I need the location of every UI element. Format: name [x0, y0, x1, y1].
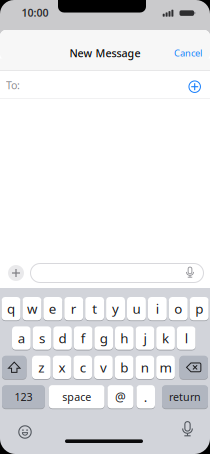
- button[interactable]: Message field: [30, 263, 204, 283]
- button[interactable]: @: [107, 385, 133, 409]
- staticText: u: [132, 300, 140, 317]
- button[interactable]: Delete: [179, 355, 208, 379]
- button[interactable]: m: [156, 355, 175, 379]
- button[interactable]: j: [136, 326, 154, 350]
- staticText: 123: [14, 390, 32, 404]
- button[interactable]: Add Contact: [188, 80, 202, 94]
- button[interactable]: p: [190, 296, 209, 321]
- button[interactable]: Emoji: [18, 425, 32, 439]
- staticText: .: [144, 388, 148, 406]
- staticText: space: [62, 390, 91, 404]
- button[interactable]: x: [53, 355, 71, 379]
- staticText: k: [162, 329, 169, 347]
- button[interactable]: c: [73, 355, 92, 379]
- button[interactable]: g: [94, 326, 113, 350]
- staticText: r: [71, 300, 77, 317]
- staticText: g: [100, 329, 108, 347]
- staticText: d: [59, 329, 67, 347]
- button[interactable]: k: [156, 326, 175, 350]
- staticText: s: [39, 329, 45, 347]
- button[interactable]: Dictation: [179, 421, 195, 438]
- button[interactable]: y: [106, 296, 125, 321]
- staticText: return: [169, 390, 201, 404]
- staticText: i: [156, 300, 159, 317]
- staticText: y: [112, 300, 119, 317]
- staticText: To:: [6, 78, 20, 92]
- button[interactable]: z: [32, 355, 51, 379]
- button[interactable]: Cancel: [174, 47, 202, 59]
- staticText: b: [120, 358, 128, 376]
- button[interactable]: .: [136, 385, 155, 409]
- button[interactable]: r: [64, 296, 83, 321]
- staticText: h: [120, 329, 128, 347]
- button[interactable]: v: [94, 355, 113, 379]
- staticText: w: [27, 300, 37, 317]
- button[interactable]: space: [49, 385, 104, 409]
- staticText: 10:00: [21, 5, 48, 20]
- staticText: New Message: [69, 46, 140, 60]
- staticText: j: [143, 329, 146, 347]
- button[interactable]: d: [53, 326, 72, 350]
- button[interactable]: a: [12, 326, 31, 350]
- staticText: z: [38, 358, 44, 376]
- button[interactable]: s: [33, 326, 51, 350]
- button[interactable]: o: [169, 296, 188, 321]
- staticText: v: [100, 358, 107, 376]
- button[interactable]: e: [43, 296, 62, 321]
- button[interactable]: l: [177, 326, 195, 350]
- staticText: q: [7, 300, 15, 317]
- button[interactable]: w: [22, 296, 41, 321]
- staticText: e: [49, 300, 57, 317]
- staticText: t: [92, 300, 97, 317]
- button[interactable]: b: [115, 355, 133, 379]
- button[interactable]: f: [74, 326, 92, 350]
- button[interactable]: Apps: [8, 265, 24, 281]
- staticText: @: [115, 389, 126, 405]
- staticText: x: [59, 358, 66, 376]
- button[interactable]: q: [2, 296, 20, 321]
- staticText: Cancel: [174, 47, 202, 59]
- staticText: n: [141, 358, 149, 376]
- staticText: l: [185, 329, 188, 347]
- button[interactable]: n: [135, 355, 154, 379]
- button[interactable]: return: [162, 385, 208, 409]
- button[interactable]: Dictate: [183, 265, 197, 280]
- button[interactable]: u: [127, 296, 146, 321]
- button[interactable]: 123: [2, 385, 45, 409]
- staticText: p: [195, 300, 203, 317]
- staticText: m: [159, 358, 171, 376]
- staticText: f: [81, 329, 86, 347]
- button[interactable]: i: [148, 296, 167, 321]
- staticText: o: [174, 300, 182, 317]
- button[interactable]: t: [85, 296, 104, 321]
- staticText: c: [80, 358, 86, 376]
- button[interactable]: h: [115, 326, 134, 350]
- staticText: a: [18, 329, 25, 347]
- button[interactable]: Shift: [2, 355, 26, 379]
